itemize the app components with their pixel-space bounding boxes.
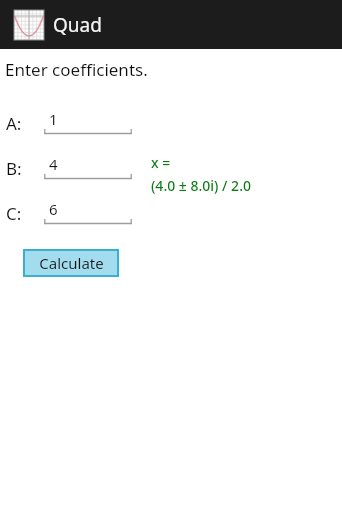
staticText: A: [6, 112, 22, 135]
staticText: 1 [49, 109, 58, 129]
button[interactable]: Calculate [23, 249, 119, 277]
staticText: 6 [49, 199, 58, 219]
staticText: Enter coefficients. [5, 58, 148, 81]
staticText: (4.0 ± 8.0i) / 2.0 [151, 176, 251, 195]
staticText: x = [151, 153, 171, 172]
staticText: Calculate [39, 253, 104, 273]
button[interactable]: 1 [44, 108, 132, 135]
button[interactable]: 6 [44, 198, 132, 225]
button[interactable]: 4 [44, 153, 132, 180]
staticText: Quad [53, 12, 102, 38]
staticText: B: [6, 157, 22, 180]
other: Quad app icon [14, 10, 44, 40]
staticText: C: [6, 202, 22, 225]
staticText: 4 [49, 154, 58, 174]
